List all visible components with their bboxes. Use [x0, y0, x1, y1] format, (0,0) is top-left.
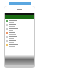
button[interactable]	[5, 35, 34, 39]
button[interactable]	[5, 23, 34, 27]
button[interactable]	[5, 43, 34, 47]
button[interactable]	[5, 27, 34, 31]
button[interactable]	[5, 31, 34, 35]
button[interactable]	[5, 19, 34, 23]
button[interactable]	[5, 39, 34, 43]
